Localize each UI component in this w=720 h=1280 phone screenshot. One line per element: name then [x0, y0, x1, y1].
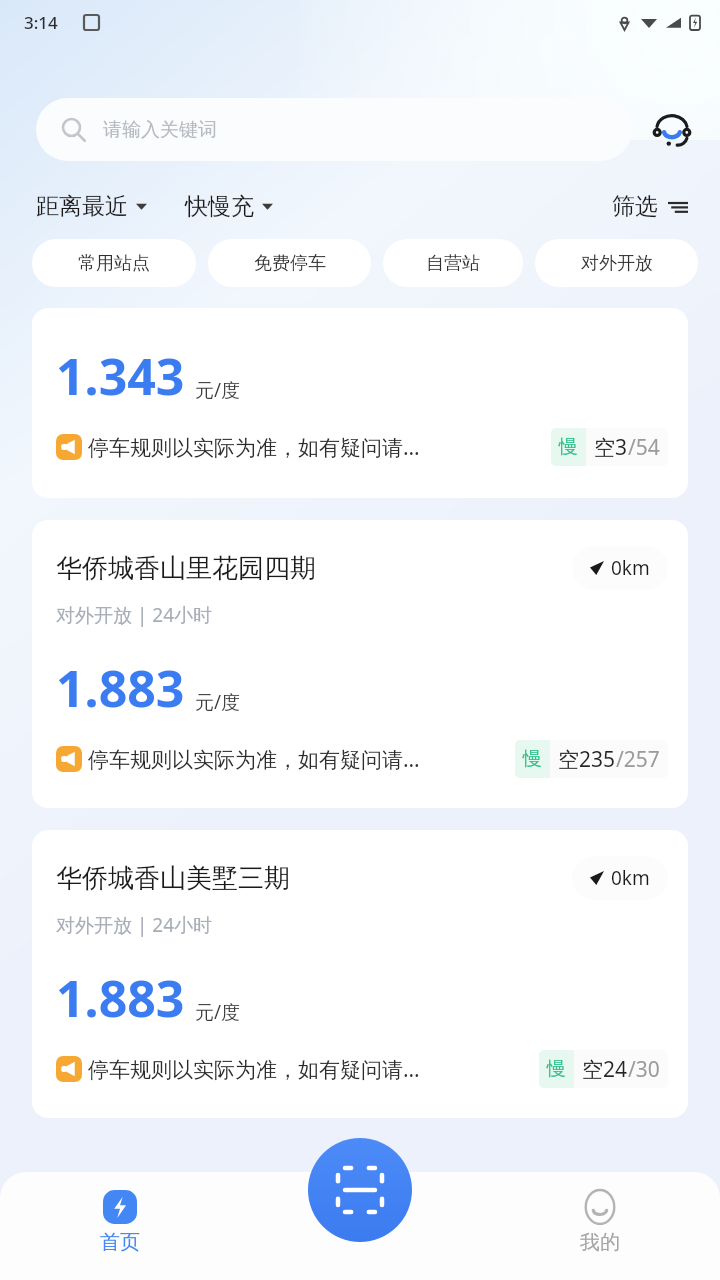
button[interactable]: 距离最近	[36, 192, 147, 221]
staticText: 停车规则以实际为准，如有疑问请…	[88, 433, 420, 462]
staticText: 停车规则以实际为准，如有疑问请…	[88, 745, 420, 774]
staticText: 元/度	[195, 999, 241, 1025]
button[interactable]: 自营站	[383, 239, 523, 287]
staticText: 元/度	[195, 689, 241, 715]
button[interactable]: 常用站点	[32, 239, 196, 287]
button[interactable]: 首页	[0, 1172, 240, 1280]
button[interactable]: 我的	[480, 1172, 720, 1280]
staticText: 对外开放 | 24小时	[56, 912, 213, 938]
staticText: 停车规则以实际为准，如有疑问请…	[88, 1055, 420, 1084]
staticText: 距离最近	[36, 192, 128, 221]
button[interactable]: 华侨城香山美墅三期	[32, 830, 688, 1118]
button[interactable]: 1.343	[32, 308, 688, 498]
button[interactable]: 0km	[572, 856, 668, 900]
button[interactable]: Customer service	[648, 106, 696, 154]
button[interactable]: 请输入关键词	[36, 98, 632, 161]
staticText: 0km	[611, 865, 650, 891]
staticText: /257	[616, 745, 660, 774]
staticText: 空24	[582, 1055, 628, 1084]
staticText: 华侨城香山里花园四期	[56, 552, 316, 585]
staticText: 免费停车	[254, 252, 326, 275]
staticText: 空3	[594, 433, 628, 462]
staticText: 请输入关键词	[103, 118, 217, 142]
staticText: 慢	[559, 435, 578, 459]
button[interactable]: 快慢充	[185, 192, 273, 221]
staticText: 1.883	[56, 964, 185, 1032]
staticText: 0km	[611, 555, 650, 581]
button[interactable]: 免费停车	[208, 239, 371, 287]
staticText: 首页	[100, 1230, 140, 1255]
button[interactable]: Scan	[308, 1138, 412, 1242]
staticText: 对外开放 | 24小时	[56, 602, 213, 628]
staticText: 元/度	[195, 377, 241, 403]
staticText: 自营站	[426, 252, 480, 275]
staticText: 慢	[523, 747, 542, 771]
staticText: 1.343	[56, 342, 185, 410]
staticText: 快慢充	[185, 192, 254, 221]
staticText: 华侨城香山美墅三期	[56, 862, 290, 895]
staticText: /54	[628, 433, 660, 462]
staticText: 1.883	[56, 654, 185, 722]
staticText: /30	[628, 1055, 660, 1084]
staticText: 空235	[558, 745, 616, 774]
staticText: 慢	[547, 1057, 566, 1081]
button[interactable]: 筛选	[612, 192, 688, 221]
button[interactable]: 对外开放	[535, 239, 698, 287]
staticText: 常用站点	[78, 252, 150, 275]
button[interactable]: 华侨城香山里花园四期	[32, 520, 688, 808]
staticText: 对外开放	[581, 252, 653, 275]
button[interactable]: 0km	[572, 546, 668, 590]
staticText: 3:14	[24, 11, 58, 34]
staticText: 筛选	[612, 192, 658, 221]
staticText: 我的	[580, 1230, 620, 1255]
